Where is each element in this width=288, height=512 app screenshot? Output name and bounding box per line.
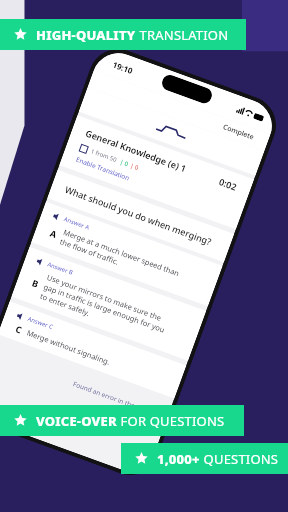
- staticText: 1 from 50: [90, 147, 119, 164]
- button[interactable]: 1,000+: [121, 443, 288, 474]
- staticText: What should you do when merging?: [63, 183, 213, 247]
- button[interactable]: Enable Translation: [75, 155, 131, 183]
- staticText: Answer B: [46, 260, 74, 277]
- staticText: B: [28, 275, 43, 291]
- staticText: HIGH-QUALITY: [36, 26, 136, 44]
- staticText: Answer C: [26, 315, 55, 332]
- staticText: 0:02: [217, 175, 238, 192]
- staticText: QUESTIONS: [200, 450, 279, 468]
- staticText: General Knowledge (e) 1: [84, 127, 189, 174]
- staticText: Merge without signaling.: [25, 327, 112, 367]
- button[interactable]: VOICE-OVER: [0, 405, 244, 436]
- other: Play Answer A: [52, 212, 61, 221]
- button[interactable]: Play Answer B: [11, 247, 206, 361]
- staticText: Use your mirrors to make sure the gap in…: [39, 272, 170, 344]
- staticText: FOR QUESTIONS: [117, 412, 225, 430]
- button[interactable]: HIGH-QUALITY: [0, 19, 246, 50]
- staticText: TRANSLATION: [136, 26, 229, 44]
- button[interactable]: Play Answer C: [0, 301, 186, 398]
- staticText: | 0: [129, 162, 140, 172]
- button[interactable]: Found an error in the text?: [72, 379, 152, 416]
- staticText: Answer A: [63, 215, 91, 232]
- staticText: VOICE-OVER: [36, 412, 117, 430]
- other: Play Answer C: [16, 312, 25, 321]
- staticText: | 0: [119, 158, 130, 168]
- staticText: Merge at a much lower speed than the flo…: [59, 227, 181, 288]
- staticText: Complete: [221, 122, 256, 143]
- staticText: C: [11, 321, 26, 337]
- button[interactable]: Play Answer A: [31, 202, 223, 306]
- staticText: 1,000+: [157, 450, 200, 468]
- other: Play Answer B: [36, 257, 45, 266]
- staticText: 19:10: [111, 59, 135, 76]
- staticText: A: [46, 225, 61, 241]
